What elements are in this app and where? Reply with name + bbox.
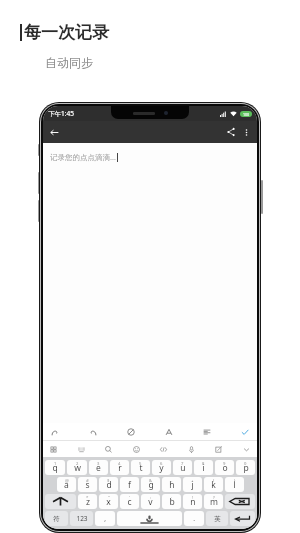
staticText: + — [191, 478, 194, 484]
staticText: n — [190, 496, 196, 508]
button[interactable]: o — [215, 460, 234, 475]
button[interactable]: l — [225, 477, 244, 492]
button[interactable]: Collapse keyboard — [241, 444, 252, 455]
staticText: l — [233, 479, 236, 491]
button[interactable]: Translate — [158, 444, 169, 455]
staticText: 符 — [53, 515, 60, 523]
button[interactable]: u — [173, 460, 192, 475]
staticText: w — [74, 462, 81, 474]
button[interactable]: e — [89, 460, 108, 475]
staticText: ' — [129, 495, 130, 501]
button[interactable] — [230, 511, 255, 526]
button[interactable]: More options — [241, 127, 252, 138]
staticText: * — [86, 495, 89, 501]
button[interactable]: 符 — [45, 511, 68, 526]
staticText: r — [118, 462, 122, 474]
button[interactable]: b — [162, 494, 181, 509]
staticText: 1 — [54, 461, 57, 467]
staticText: x — [106, 496, 111, 508]
button[interactable]: Text style — [163, 426, 175, 438]
button[interactable]: Search — [103, 444, 114, 455]
staticText: 2 — [76, 461, 79, 467]
button[interactable]: Voice input — [186, 444, 197, 455]
staticText: k — [211, 479, 216, 491]
staticText: 4 — [118, 461, 121, 467]
button[interactable]: h — [162, 477, 181, 492]
button[interactable]: Clear formatting — [125, 426, 137, 438]
staticText: : — [150, 495, 152, 501]
button[interactable]: p — [236, 460, 255, 475]
staticText: 0 — [244, 461, 247, 467]
staticText: . — [193, 514, 195, 523]
button[interactable]: Undo — [49, 426, 61, 438]
button[interactable]: y — [152, 460, 171, 475]
button[interactable]: Done — [239, 426, 251, 438]
staticText: 123 — [76, 514, 88, 523]
button[interactable]: z — [78, 494, 97, 509]
staticText: , — [104, 514, 106, 523]
staticText: _ — [129, 478, 131, 484]
staticText: d — [106, 479, 112, 491]
staticText: s — [85, 479, 90, 491]
button[interactable]: d — [99, 477, 118, 492]
button[interactable]: r — [110, 460, 129, 475]
button[interactable]: m — [204, 494, 223, 509]
button[interactable]: Emoji — [131, 444, 142, 455]
button[interactable]: s — [78, 477, 97, 492]
staticText: - — [171, 478, 173, 484]
staticText: 记录您的点点滴滴… — [50, 152, 116, 162]
staticText: a — [64, 479, 69, 491]
button[interactable]: w — [67, 460, 87, 475]
button[interactable]: q — [45, 460, 65, 475]
button[interactable]: t — [131, 460, 150, 475]
staticText: o — [222, 462, 228, 474]
button[interactable]: n — [183, 494, 202, 509]
staticText: t — [139, 462, 143, 474]
staticText: " — [108, 495, 110, 501]
staticText: i — [202, 462, 205, 474]
button[interactable]: f — [120, 477, 139, 492]
staticText: 3 — [97, 461, 100, 467]
staticText: ! — [192, 495, 194, 501]
button[interactable]: Keyboard layout — [76, 444, 87, 455]
button[interactable] — [225, 494, 255, 509]
staticText: h — [169, 479, 175, 491]
button[interactable]: Redo — [87, 426, 99, 438]
staticText: ? — [213, 495, 215, 501]
button[interactable]: Share — [225, 126, 237, 138]
staticText: ; — [171, 495, 173, 501]
button[interactable]: k — [204, 477, 223, 492]
button[interactable]: a — [57, 477, 76, 492]
staticText: v — [148, 496, 153, 508]
button[interactable]: . — [184, 511, 204, 526]
staticText: 5 — [139, 461, 142, 467]
button[interactable]: Alignment — [201, 426, 213, 438]
staticText: $ — [107, 478, 110, 484]
button[interactable]: g — [141, 477, 160, 492]
button[interactable]: i — [194, 460, 213, 475]
button[interactable]: Back — [48, 126, 61, 139]
button[interactable]: x — [99, 494, 118, 509]
staticText: y — [159, 462, 164, 474]
button[interactable]: c — [120, 494, 139, 509]
button[interactable]: 123 — [70, 511, 93, 526]
button[interactable]: Clipboard — [213, 444, 224, 455]
staticText: g — [148, 479, 154, 491]
button[interactable]: v — [141, 494, 160, 509]
staticText: c — [127, 496, 132, 508]
staticText: p — [243, 462, 249, 474]
staticText: ) — [234, 478, 236, 484]
button[interactable]: , — [95, 511, 115, 526]
staticText: ( — [213, 478, 215, 484]
staticText: q — [52, 462, 58, 474]
button[interactable]: Toolbox — [48, 444, 59, 455]
staticText: z — [86, 496, 90, 508]
button[interactable]: j — [183, 477, 202, 492]
staticText: 6 — [160, 461, 163, 467]
staticText: u — [180, 462, 186, 474]
button[interactable] — [45, 494, 76, 509]
staticText: 英 — [214, 515, 221, 523]
button[interactable] — [117, 511, 182, 526]
button[interactable]: 英 — [206, 511, 228, 526]
button[interactable]: 记录您的点点滴滴… — [43, 143, 257, 423]
